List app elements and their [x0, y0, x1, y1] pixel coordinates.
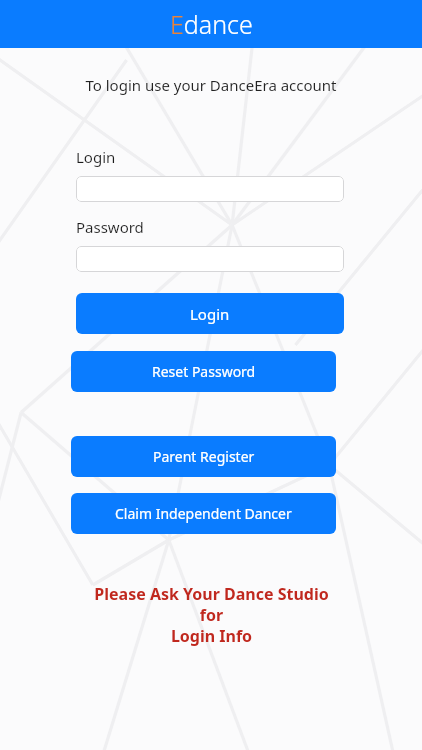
button[interactable] [76, 176, 344, 202]
button[interactable] [76, 246, 344, 272]
staticText: Parent Register [153, 447, 255, 466]
staticText: Login [76, 147, 116, 167]
staticText: Claim Independent Dancer [115, 504, 292, 523]
staticText: Login [190, 304, 230, 324]
button[interactable]: Reset Password [71, 351, 336, 392]
staticText: Reset Password [152, 362, 256, 381]
button[interactable]: Claim Independent Dancer [71, 493, 336, 534]
button[interactable]: Parent Register [71, 436, 336, 477]
staticText: Edance [170, 7, 253, 41]
staticText: To login use your DanceEra account [85, 75, 337, 95]
staticText: Password [76, 217, 144, 237]
button[interactable]: Login [76, 293, 344, 334]
staticText: Please Ask Your Dance Studio for Login I… [94, 583, 329, 647]
